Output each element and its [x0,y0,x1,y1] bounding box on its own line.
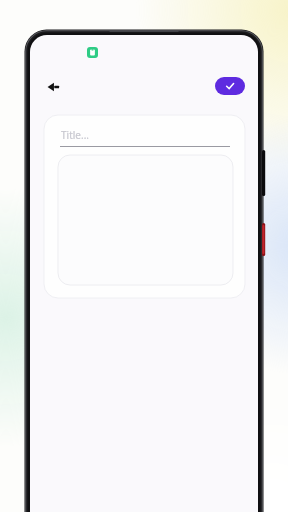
other: Notes app [87,47,98,58]
button[interactable]: Title... [61,128,90,142]
button[interactable]: Save note [215,77,245,95]
button[interactable]: Back [42,76,64,98]
